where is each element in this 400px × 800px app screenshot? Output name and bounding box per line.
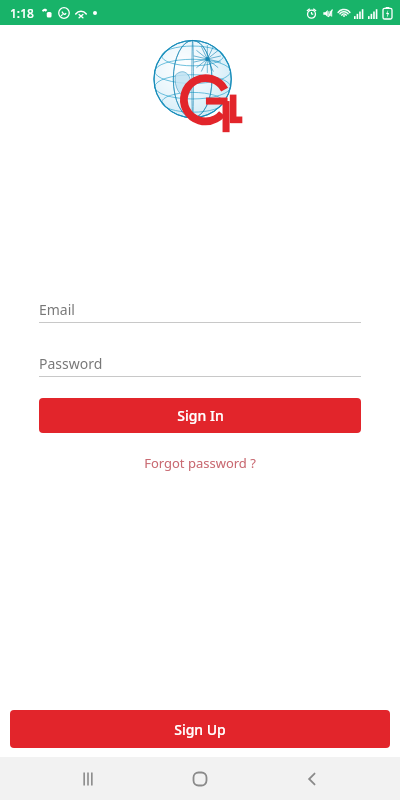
- button[interactable]: Sign In: [39, 398, 361, 433]
- button[interactable]: Home: [176, 757, 224, 800]
- staticText: 1:18: [10, 5, 34, 21]
- button[interactable]: Forgot password ?: [0, 454, 400, 472]
- button[interactable]: Password: [39, 350, 361, 377]
- staticText: Forgot password ?: [144, 454, 256, 472]
- staticText: Sign In: [177, 406, 224, 425]
- staticText: Sign Up: [174, 720, 226, 739]
- staticText: Email: [39, 300, 75, 319]
- button[interactable]: Sign Up: [10, 710, 390, 748]
- button[interactable]: Back: [288, 757, 336, 800]
- staticText: Password: [39, 354, 103, 373]
- button[interactable]: Recent apps: [64, 757, 112, 800]
- button[interactable]: Email: [39, 296, 361, 323]
